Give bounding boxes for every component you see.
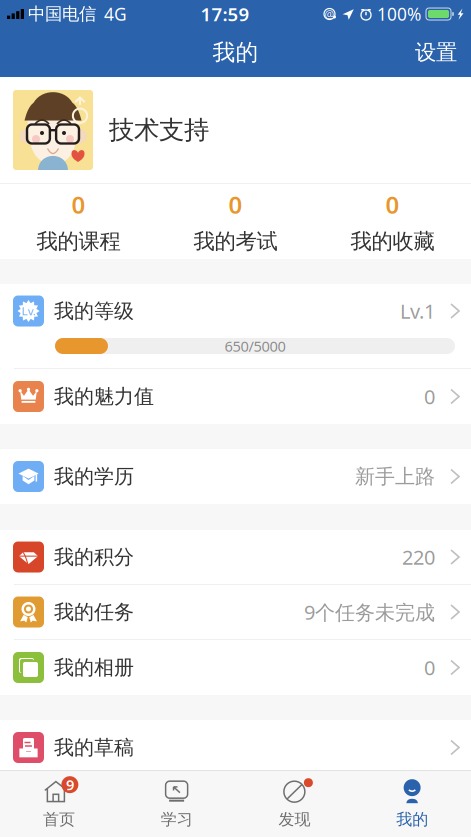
staticText: 我的 <box>212 39 258 66</box>
staticText: 0 <box>385 188 399 220</box>
staticText: 中国电信 <box>28 3 96 25</box>
staticText: Lv. <box>21 305 35 318</box>
staticText: 4G <box>104 2 127 25</box>
staticText: 0 <box>228 188 242 220</box>
button[interactable]: 我的积分 <box>0 530 471 585</box>
button[interactable]: 0 <box>314 184 471 259</box>
button[interactable]: 首页 <box>0 771 118 837</box>
button[interactable]: 我的草稿 <box>0 720 471 775</box>
button[interactable]: 我的魅力值 <box>0 369 471 424</box>
staticText: 新手上路 <box>355 464 435 489</box>
staticText: 650/5000 <box>224 336 285 356</box>
staticText: 我的相册 <box>54 655 134 680</box>
staticText: Lv.1 <box>400 298 435 324</box>
staticText: 我的任务 <box>54 600 134 624</box>
staticText: 220 <box>402 544 435 570</box>
button[interactable]: 我的学历 <box>0 449 471 504</box>
button[interactable]: 我的相册 <box>0 640 471 695</box>
staticText: 9 <box>66 775 74 794</box>
button[interactable]: Lv. <box>0 284 471 369</box>
staticText: 我的 <box>396 810 428 829</box>
staticText: 我的草稿 <box>54 735 134 760</box>
staticText: 我的收藏 <box>350 228 434 254</box>
button[interactable]: 我的 <box>353 771 471 837</box>
staticText: 0 <box>424 383 435 410</box>
staticText: 0 <box>424 654 435 681</box>
button[interactable]: 技术支持 <box>0 77 471 183</box>
staticText: 技术支持 <box>109 114 209 145</box>
staticText: 首页 <box>43 810 75 829</box>
staticText: 我的等级 <box>54 299 134 323</box>
staticText: 我的学历 <box>54 464 134 489</box>
staticText: 0 <box>71 188 85 220</box>
button[interactable]: 0 <box>0 184 157 259</box>
button[interactable]: 发现 <box>235 771 353 837</box>
staticText: 9个任务未完成 <box>304 599 435 625</box>
staticText: 17:59 <box>200 2 249 26</box>
button[interactable]: 设置 <box>401 28 471 77</box>
staticText: 发现 <box>278 810 310 829</box>
staticText: 我的积分 <box>54 545 134 569</box>
staticText: 我的魅力值 <box>54 384 154 409</box>
button[interactable]: 0 <box>157 184 314 259</box>
button[interactable]: 我的任务 <box>0 585 471 640</box>
staticText: 学习 <box>161 810 193 829</box>
staticText: 设置 <box>415 39 457 66</box>
button[interactable]: 学习 <box>118 771 236 837</box>
staticText: @ <box>324 7 334 21</box>
staticText: 我的考试 <box>193 228 277 254</box>
staticText: 100% <box>377 2 421 25</box>
staticText: 我的课程 <box>36 228 120 254</box>
